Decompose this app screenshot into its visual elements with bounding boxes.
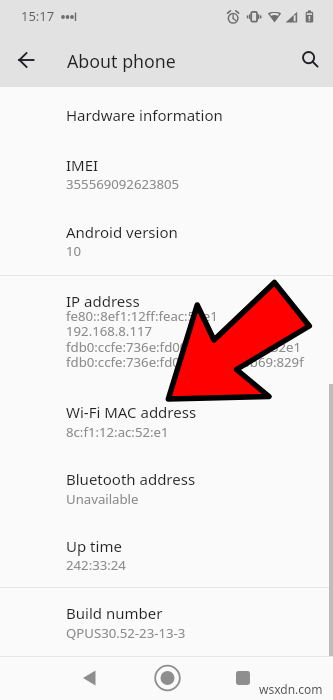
staticText: IMEI [66,155,99,175]
staticText: Bluetooth address [66,469,196,489]
staticText: Build number [66,603,163,623]
button[interactable]: Search [288,40,328,80]
staticText: 10 [66,242,82,260]
staticText: fdb0:ccfe:736e:fd00:5a7:ca1:bb69:829f [66,353,304,371]
staticText: IP address [66,291,140,311]
staticText: 8c:f1:12:ac:52:e1 [66,423,169,441]
staticText: fdb0:ccfe:736e:fd00:8ef1:12ff:fec:52e1 [66,338,302,356]
staticText: Up time [66,536,122,556]
staticText: Hardware information [66,105,223,125]
button[interactable] [0,95,333,128]
button[interactable] [0,212,333,266]
staticText: Unavailable [66,490,139,508]
staticText: Android version [66,222,178,242]
button[interactable]: Back [69,657,112,700]
staticText: 355569092623805 [66,175,180,193]
button[interactable] [0,145,333,199]
button[interactable] [0,526,333,580]
staticText: Wi-Fi MAC address [66,402,197,422]
button[interactable] [0,281,333,378]
staticText: About phone [67,49,176,73]
button[interactable]: Back [6,40,46,80]
staticText: 15:17 [21,7,55,25]
button[interactable] [0,459,333,514]
staticText: wsxdn.com [259,681,323,697]
button[interactable] [0,593,333,648]
button[interactable]: Recent apps [222,657,265,700]
staticText: 242:33:24 [66,556,126,574]
button[interactable] [0,392,333,447]
staticText: 192.168.8.117 [66,322,153,340]
staticText: QPUS30.52-23-13-3 [66,624,186,642]
button[interactable]: Home [146,657,189,700]
staticText: fe80::8ef1:12ff:feac:52e1 [66,307,218,325]
